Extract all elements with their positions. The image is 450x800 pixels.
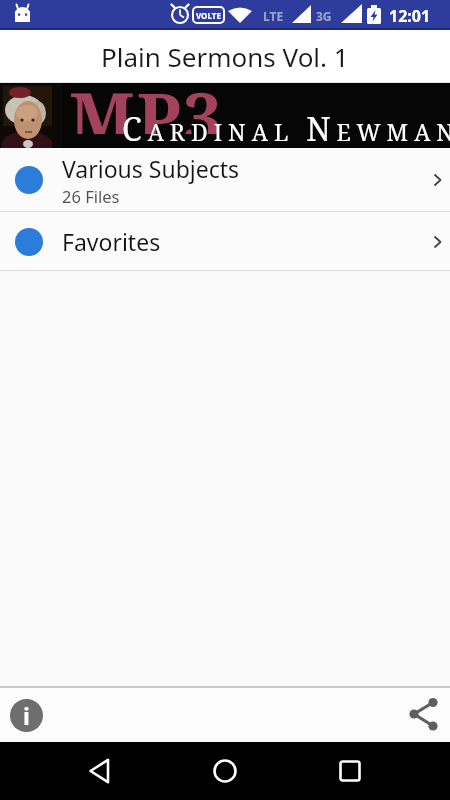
button[interactable]: i <box>10 699 43 732</box>
staticText: Various Subjects <box>62 153 240 184</box>
button[interactable]: MP3 <box>0 83 450 148</box>
staticText: LTE <box>263 8 284 24</box>
staticText: i <box>23 700 30 731</box>
staticText: MP3 <box>69 69 224 134</box>
staticText: 26 Files <box>62 185 120 207</box>
staticText: VOLTE <box>196 10 221 21</box>
button[interactable] <box>201 747 249 795</box>
staticText: 12:01 <box>389 5 431 27</box>
button[interactable] <box>76 747 124 795</box>
staticText: Plain Sermons Vol. 1 <box>101 39 349 74</box>
button[interactable] <box>402 695 442 735</box>
button[interactable]: Various Subjects <box>0 148 450 212</box>
staticText: Favorites <box>62 226 161 257</box>
staticText: 3G <box>316 8 332 24</box>
button[interactable]: Favorites <box>0 212 450 271</box>
button[interactable] <box>326 747 374 795</box>
staticText: CARDINAL NEWMAN <box>122 107 450 151</box>
